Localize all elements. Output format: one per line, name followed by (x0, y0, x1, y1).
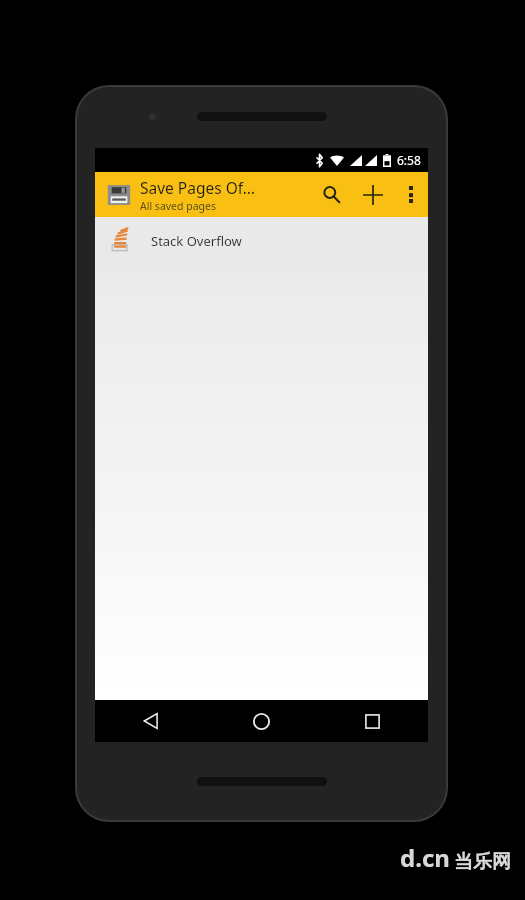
staticText: 当乐网 (454, 850, 511, 874)
button[interactable]: Home (206, 700, 317, 742)
staticText: Stack Overflow (151, 232, 242, 250)
button[interactable]: Search (310, 172, 352, 217)
button[interactable]: Back (95, 700, 206, 742)
staticText: All saved pages (140, 199, 216, 213)
button[interactable]: More options (394, 172, 428, 217)
button[interactable]: Recent apps (317, 700, 428, 742)
staticText: d.cn (400, 841, 450, 874)
staticText: 6:58 (397, 152, 421, 168)
button[interactable]: Add page (352, 172, 394, 217)
staticText: Save Pages Of… (140, 177, 256, 198)
button[interactable]: Stack Overflow (95, 217, 428, 265)
